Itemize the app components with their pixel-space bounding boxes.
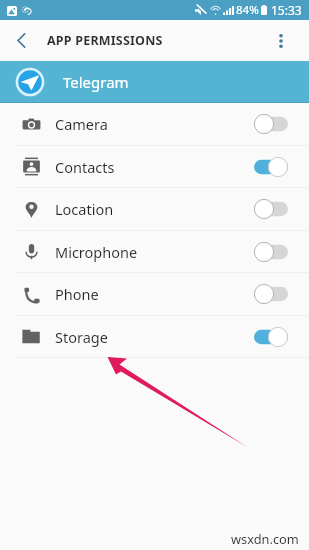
button[interactable]: More options [266,20,296,61]
button[interactable]: Storage [0,316,309,358]
staticText: Telegram [63,72,129,92]
staticText: APP PERMISSIONS [47,32,163,49]
button[interactable]: Location [0,188,309,231]
button[interactable]: Camera [0,103,309,146]
button[interactable]: Back [0,20,42,61]
staticText: 15:33 [271,2,302,18]
button[interactable]: Microphone [0,231,309,273]
staticText: Location [55,199,114,219]
button[interactable]: Telegram [0,61,309,103]
staticText: wsxdn.com [231,530,299,547]
button[interactable]: Phone [0,273,309,316]
staticText: 84% [236,2,259,18]
staticText: Storage [55,327,108,347]
staticText: Phone [55,284,99,304]
staticText: Contacts [55,157,115,177]
staticText: Microphone [55,242,138,262]
button[interactable]: Contacts [0,146,309,188]
staticText: Camera [55,114,108,134]
